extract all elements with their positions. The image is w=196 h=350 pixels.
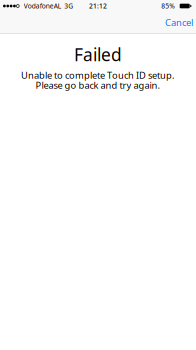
- staticText: Please go back and try again.: [35, 79, 160, 91]
- staticText: 3G: [64, 2, 73, 10]
- staticText: Failed: [74, 43, 122, 66]
- staticText: VodafoneAL: [24, 2, 61, 10]
- staticText: 85%: [161, 2, 175, 10]
- staticText: Unable to complete Touch ID setup.: [21, 69, 175, 81]
- button[interactable]: Cancel: [157, 11, 196, 34]
- staticText: 21:12: [89, 2, 107, 10]
- staticText: Cancel: [165, 16, 193, 29]
